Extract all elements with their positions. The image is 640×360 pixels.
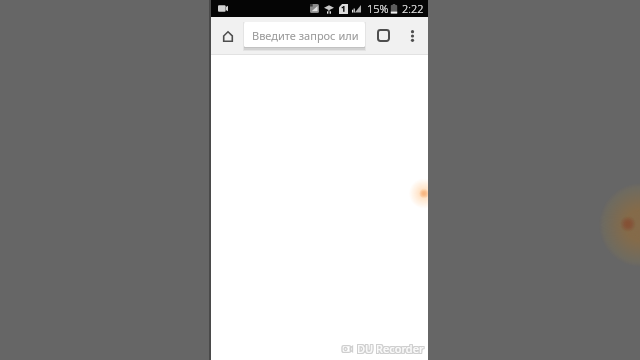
staticText: DU Recorder	[356, 341, 423, 356]
button[interactable]: Tabs	[370, 22, 396, 47]
staticText: 15%	[367, 1, 389, 16]
staticText: DU Recorder	[356, 342, 423, 357]
button[interactable]: More options	[401, 22, 423, 47]
staticText: DU Recorder	[358, 341, 425, 356]
button[interactable]: Home	[212, 22, 244, 47]
staticText: DU Recorder	[358, 340, 425, 355]
staticText: Введите запрос или URL	[252, 28, 365, 43]
staticText: DU Recorder	[358, 342, 425, 357]
staticText: DU Recorder	[357, 340, 424, 355]
staticText: DU Recorder	[357, 341, 424, 356]
button[interactable]: Введите запрос или URL	[244, 22, 365, 47]
staticText: DU Recorder	[356, 340, 423, 355]
staticText: DU Recorder	[357, 342, 424, 357]
staticText: 2:22	[402, 1, 424, 16]
